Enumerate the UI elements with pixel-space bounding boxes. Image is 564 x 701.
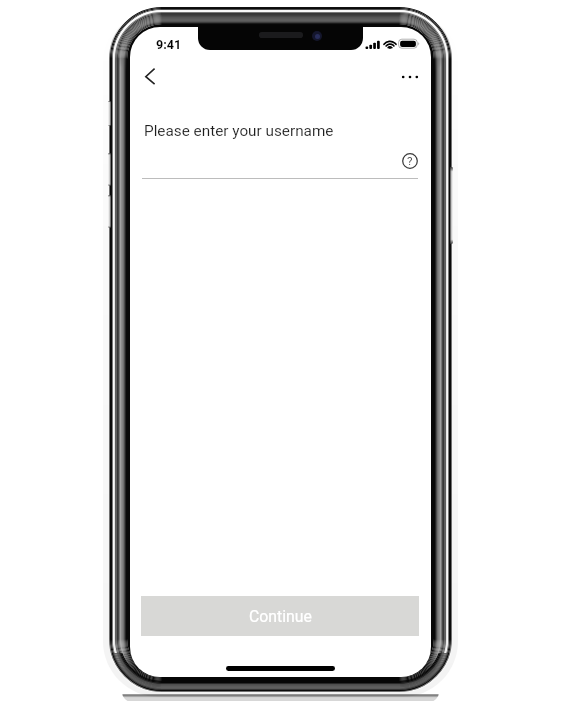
button[interactable]: Back [130,58,172,96]
staticText: ? [407,154,413,168]
staticText: 9:41 [156,37,182,52]
button[interactable]: More options [389,58,431,96]
staticText: Please enter your username [144,122,334,140]
staticText: Continue [249,607,312,626]
button[interactable]: Help [398,149,422,173]
button[interactable]: Continue [141,596,419,636]
